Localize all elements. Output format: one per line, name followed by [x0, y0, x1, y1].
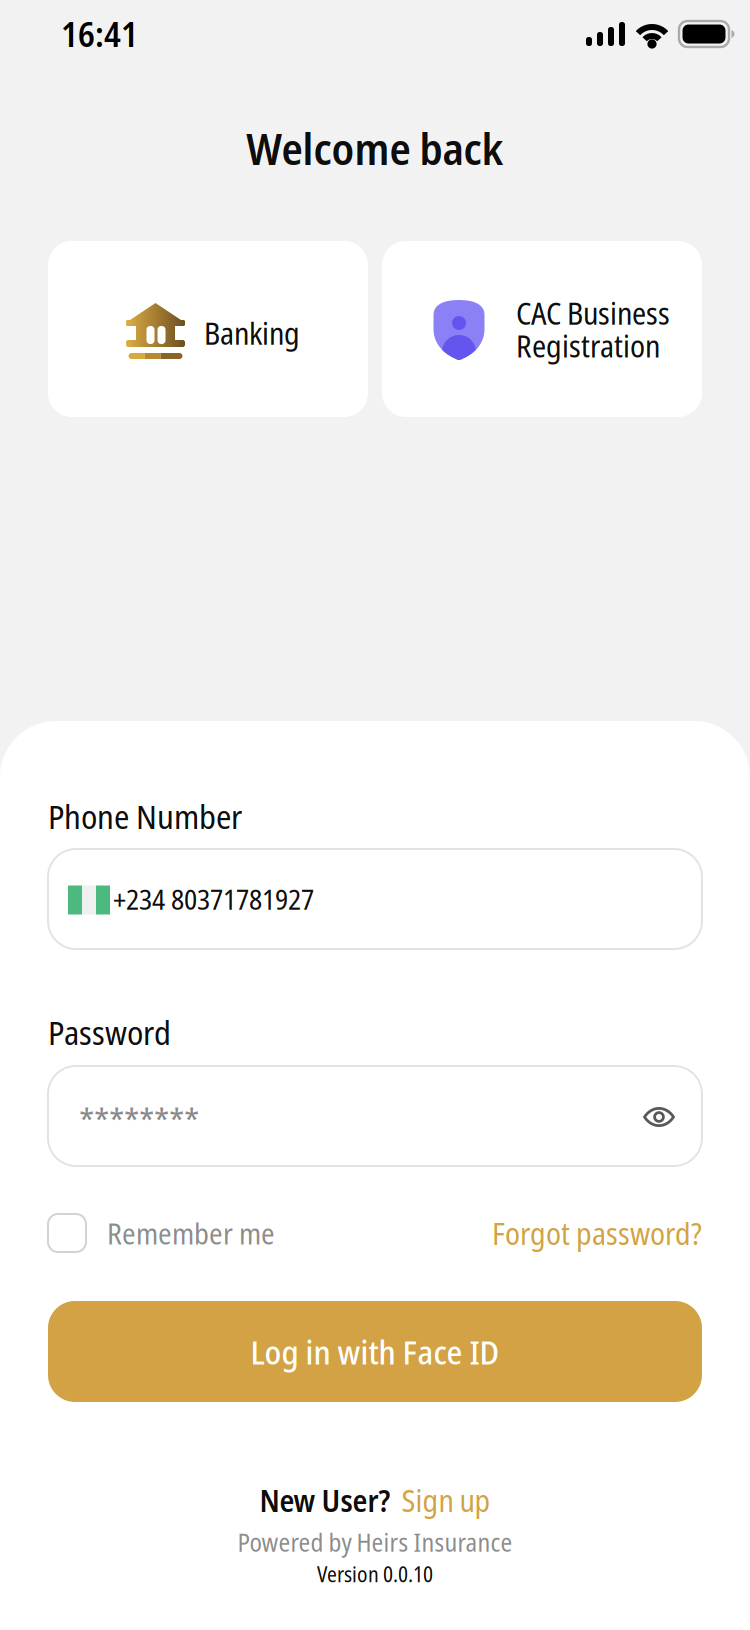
staticText: Log in with Face ID	[250, 1329, 499, 1374]
button[interactable]: Forgot password?	[492, 1206, 702, 1260]
staticText: Registration	[516, 325, 660, 367]
staticText: 16:41	[61, 10, 138, 57]
button[interactable]: Remember me	[48, 1206, 275, 1260]
staticText: CAC Business	[516, 292, 670, 334]
button[interactable]: Sign up	[401, 1479, 490, 1521]
staticText: +234 80371781927	[113, 880, 314, 918]
staticText: Phone Number	[48, 793, 242, 839]
button[interactable]: CAC Business	[382, 241, 702, 417]
staticText: Version 0.0.10	[317, 1559, 433, 1589]
staticText: Remember me	[107, 1213, 275, 1253]
staticText: Password	[48, 1009, 171, 1055]
button[interactable]: Log in with Face ID	[48, 1301, 702, 1402]
staticText: Banking	[204, 312, 300, 354]
staticText: Forgot password?	[492, 1212, 702, 1254]
staticText: New User?	[259, 1479, 390, 1521]
staticText: ********	[79, 1096, 199, 1144]
staticText: Sign up	[401, 1479, 490, 1521]
button[interactable]: Show password	[623, 1081, 695, 1153]
button[interactable]: Banking	[48, 241, 368, 417]
staticText: Welcome back	[246, 118, 503, 178]
staticText: Powered by Heirs Insurance	[237, 1525, 512, 1559]
